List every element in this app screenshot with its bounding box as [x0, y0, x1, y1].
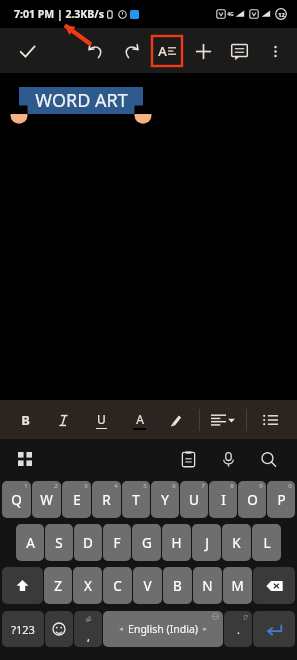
button[interactable]: U	[180, 481, 208, 518]
staticText: 9	[259, 482, 263, 490]
staticText: A	[158, 42, 167, 60]
button[interactable]: Alignment	[209, 410, 237, 430]
staticText: 3	[84, 482, 88, 490]
staticText: G	[142, 534, 152, 552]
button[interactable]: O	[238, 481, 266, 518]
staticText: A	[136, 411, 144, 427]
button[interactable]: Clipboard	[175, 446, 201, 472]
staticText: K	[232, 534, 241, 552]
button[interactable]: J	[192, 524, 221, 561]
staticText: T	[132, 491, 140, 509]
button[interactable]: H	[162, 524, 191, 561]
button[interactable]: Q	[2, 481, 31, 518]
button[interactable]: ?123	[2, 611, 44, 647]
button[interactable]: A	[16, 524, 44, 561]
button[interactable]: M	[223, 567, 252, 604]
button[interactable]: P	[267, 481, 295, 518]
staticText: 5	[143, 482, 147, 490]
button[interactable]: Voice input	[215, 446, 241, 472]
staticText: I	[221, 491, 226, 509]
button[interactable]: Done	[10, 34, 44, 68]
staticText: ▸	[203, 625, 207, 633]
button[interactable]: WORD ART	[19, 87, 143, 114]
button[interactable]: Redo	[113, 33, 149, 69]
staticText: !?	[243, 613, 248, 622]
staticText: S	[55, 534, 63, 552]
staticText: 7	[201, 482, 205, 490]
button[interactable]: R	[92, 481, 121, 518]
staticText: W	[40, 491, 53, 509]
button[interactable]: Undo	[77, 33, 113, 69]
staticText: ॐ	[85, 615, 92, 625]
staticText: C	[113, 577, 122, 595]
staticText: ◂	[119, 625, 123, 633]
staticText: U	[97, 411, 106, 427]
staticText: O	[247, 491, 258, 509]
button[interactable]: X	[73, 567, 102, 604]
staticText: X	[84, 577, 92, 595]
button[interactable]: ॐ	[74, 611, 102, 647]
button[interactable]: F	[103, 524, 131, 561]
button[interactable]: Shift	[2, 567, 43, 604]
button[interactable]: !?	[224, 611, 252, 647]
button[interactable]: Y	[151, 481, 179, 518]
staticText: N	[202, 577, 213, 595]
button[interactable]: Backspace	[253, 567, 295, 604]
button[interactable]: T	[122, 481, 150, 518]
staticText: P	[277, 491, 286, 509]
button[interactable]: I	[209, 481, 237, 518]
staticText: 1	[24, 482, 28, 490]
button[interactable]: Z	[44, 567, 72, 604]
staticText: ?123	[11, 622, 35, 637]
button[interactable]: Text formatting	[149, 33, 185, 69]
button[interactable]: G	[132, 524, 161, 561]
staticText: E	[73, 491, 81, 509]
staticText: D	[83, 534, 93, 552]
staticText: English (India)	[128, 622, 198, 636]
button[interactable]: B	[163, 567, 192, 604]
button[interactable]: Bold	[12, 407, 38, 433]
staticText: L	[263, 534, 271, 552]
staticText: Q	[11, 491, 22, 509]
button[interactable]: V	[133, 567, 162, 604]
staticText: B	[21, 411, 30, 429]
button[interactable]: Toolbar	[12, 446, 38, 472]
button[interactable]: C	[103, 567, 132, 604]
button[interactable]: Insert	[185, 33, 221, 69]
staticText: WORD ART	[35, 88, 128, 113]
staticText: U	[189, 491, 199, 509]
button[interactable]: Italic	[50, 407, 76, 433]
staticText: 6	[172, 482, 176, 490]
staticText: 0	[288, 482, 292, 490]
button[interactable]: L	[252, 524, 281, 561]
staticText: 7:01 PM | 2.3KB/s	[14, 7, 104, 21]
button[interactable]: Bulleted list	[257, 407, 283, 433]
staticText: B	[173, 577, 182, 595]
button[interactable]: More options	[257, 33, 293, 69]
button[interactable]: S	[45, 524, 73, 561]
staticText: .	[237, 622, 240, 637]
staticText: J	[205, 534, 209, 552]
button[interactable]: K	[222, 524, 251, 561]
button[interactable]: E	[62, 481, 91, 518]
staticText: M	[231, 577, 244, 595]
button[interactable]: W	[32, 481, 61, 518]
button[interactable]: Comment	[221, 33, 257, 69]
staticText: 12	[278, 11, 285, 18]
button[interactable]: Emoji	[45, 611, 73, 647]
staticText: 4G	[227, 11, 234, 18]
button[interactable]: D	[74, 524, 102, 561]
button[interactable]: Underline	[88, 407, 114, 433]
staticText: 2	[54, 482, 58, 490]
button[interactable]: Text color	[126, 407, 152, 433]
button[interactable]: Enter	[253, 611, 295, 647]
button[interactable]: ◂	[103, 611, 223, 647]
staticText: 4	[114, 482, 118, 490]
staticText: H	[171, 534, 182, 552]
button[interactable]: N	[193, 567, 222, 604]
staticText: 8	[230, 482, 234, 490]
button[interactable]: Search	[255, 446, 281, 472]
button[interactable]: Highlight	[162, 407, 188, 433]
staticText: A	[26, 534, 35, 552]
staticText: ,	[87, 629, 90, 644]
